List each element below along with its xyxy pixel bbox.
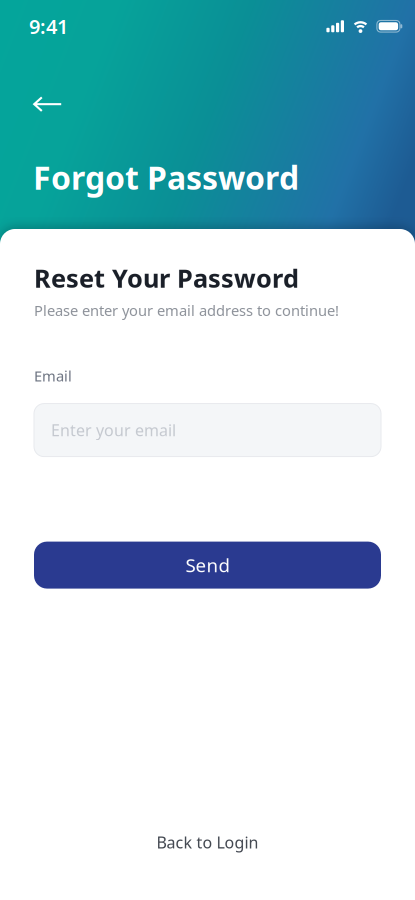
- staticText: Enter your email: [51, 419, 176, 441]
- button[interactable]: Enter your email: [34, 404, 381, 457]
- staticText: Please enter your email address to conti…: [34, 301, 339, 320]
- staticText: 9:41: [29, 13, 68, 40]
- button[interactable]: Back: [0, 40, 62, 112]
- button[interactable]: Send: [34, 542, 381, 589]
- staticText: Email: [34, 366, 72, 386]
- button[interactable]: Back to Login: [156, 832, 258, 853]
- staticText: Send: [185, 553, 229, 577]
- staticText: Back to Login: [156, 832, 258, 853]
- staticText: Forgot Password: [33, 156, 299, 199]
- staticText: Reset Your Password: [34, 261, 299, 295]
